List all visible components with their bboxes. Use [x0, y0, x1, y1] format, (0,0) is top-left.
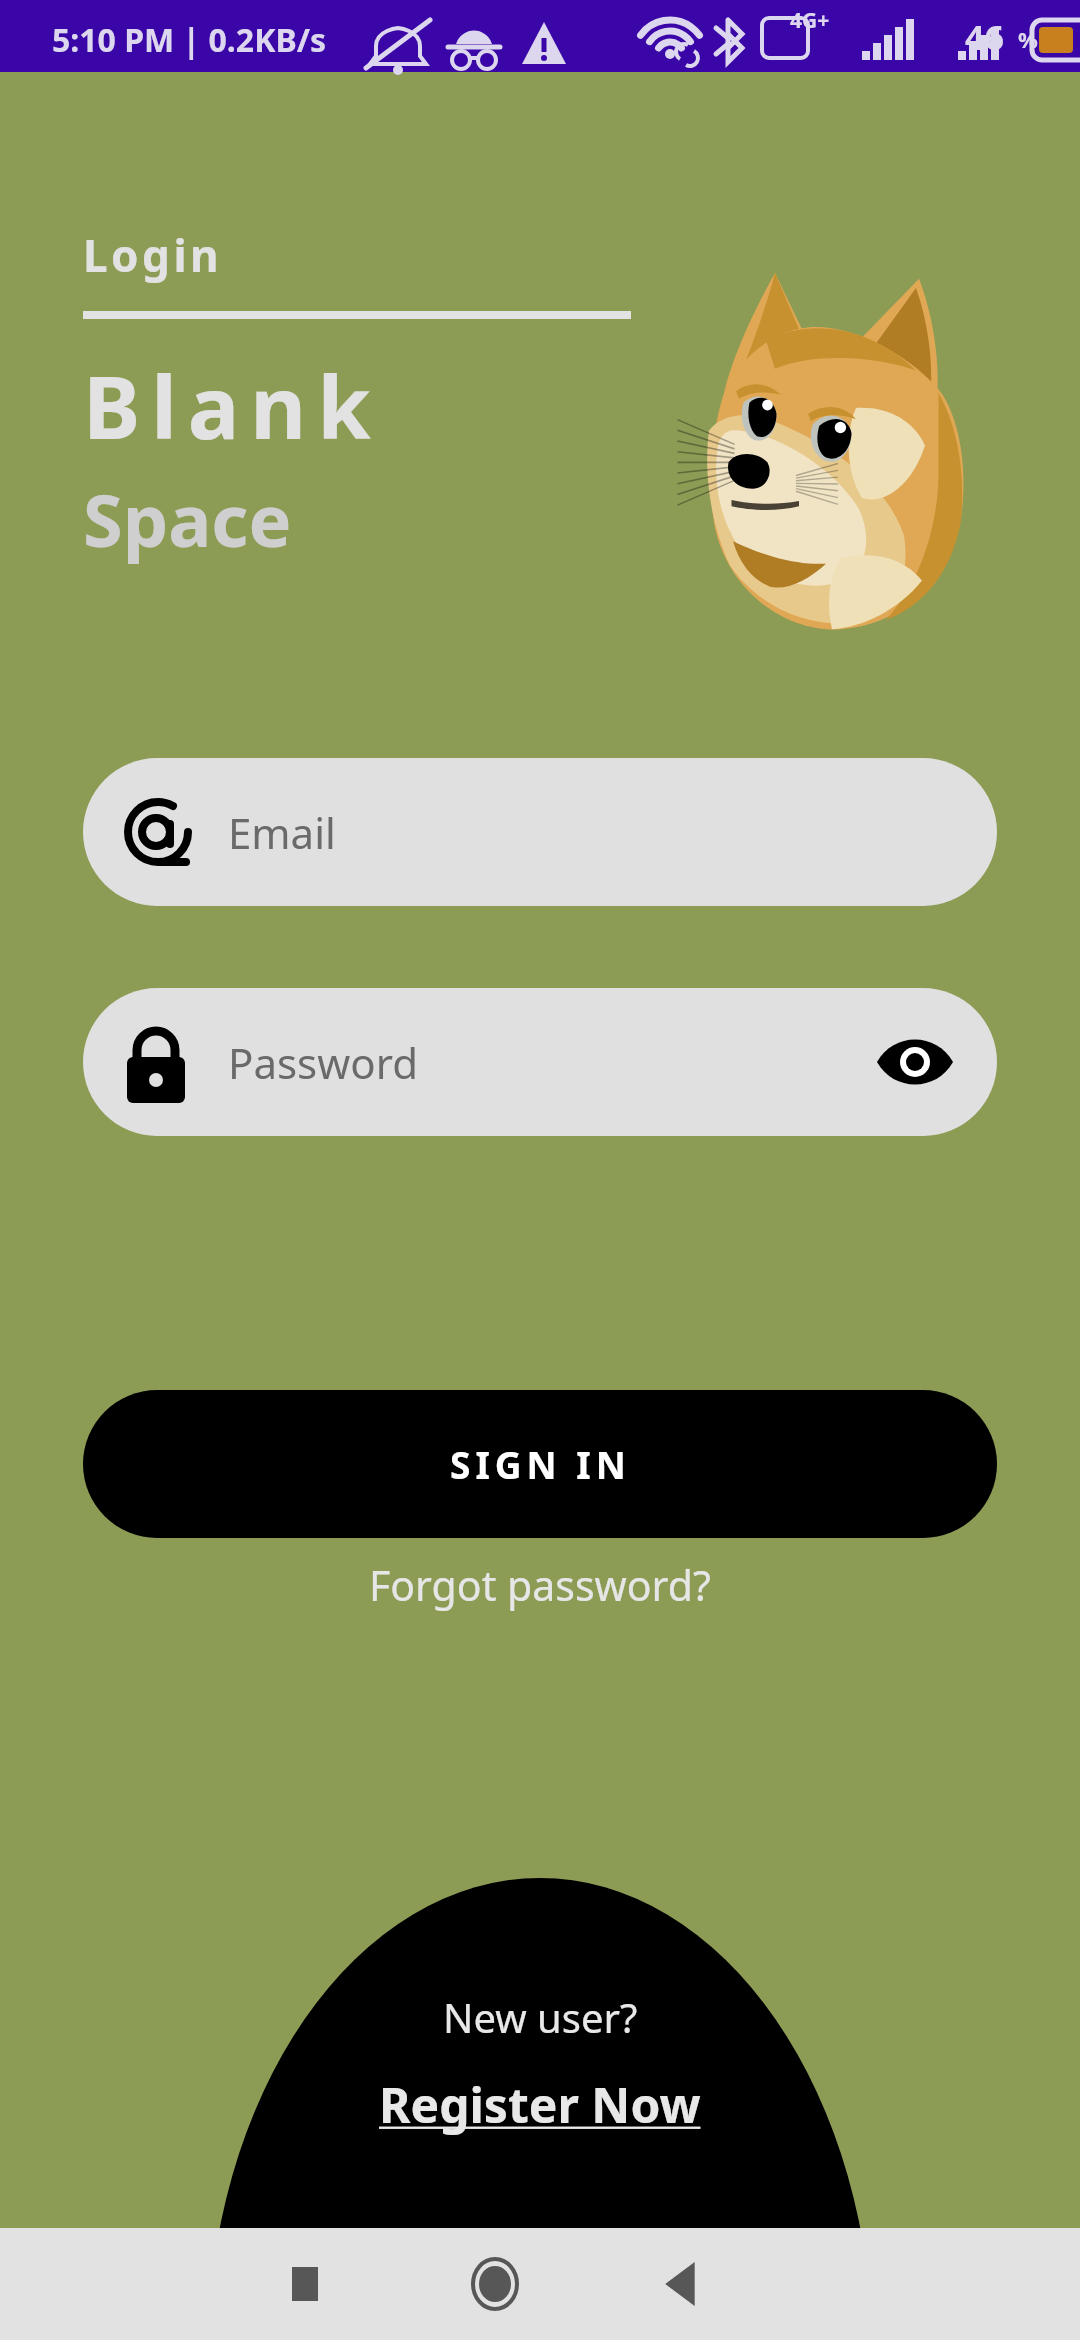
staticText: Forgot password?: [369, 1557, 711, 1613]
staticText: Vo LTE: [766, 17, 792, 55]
staticText: Blank: [83, 347, 382, 464]
staticText: Password: [228, 1034, 418, 1091]
button[interactable]: Forgot password?: [0, 1540, 1080, 1630]
button[interactable]: SIGN IN: [83, 1390, 997, 1538]
staticText: Login: [83, 225, 223, 285]
staticText: Email: [228, 804, 336, 861]
staticText: SIGN IN: [450, 1439, 631, 1489]
staticText: 4G+: [790, 6, 830, 35]
staticText: Space: [83, 470, 292, 568]
button[interactable]: Home: [450, 2239, 540, 2329]
staticText: Register Now: [379, 2072, 701, 2137]
button[interactable]: Register Now: [379, 2072, 701, 2137]
button[interactable]: Email: [83, 758, 997, 906]
staticText: 5:10 PM | 0.2KB/s: [52, 18, 327, 62]
staticText: %: [1018, 24, 1038, 54]
staticText: 46: [965, 14, 1004, 60]
staticText: New user?: [443, 1990, 638, 2044]
button[interactable]: Back: [640, 2239, 730, 2329]
button[interactable]: Recents: [260, 2239, 350, 2329]
button[interactable]: Password: [83, 988, 997, 1136]
